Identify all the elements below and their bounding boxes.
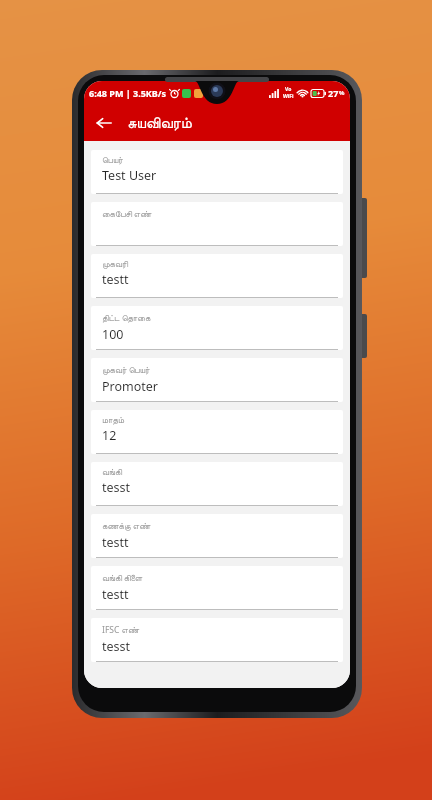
button[interactable]: கைபேசி எண் xyxy=(91,202,343,246)
staticText: % xyxy=(339,89,345,97)
staticText: முகவர் பெயர் xyxy=(102,364,150,376)
staticText: மாதம் xyxy=(102,416,125,425)
staticText: testt xyxy=(102,586,129,603)
button[interactable]: முகவரி xyxy=(91,254,343,298)
staticText: முகவரி xyxy=(102,260,128,269)
button[interactable]: மாதம் xyxy=(91,410,343,454)
button[interactable]: IFSC எண் xyxy=(91,618,343,662)
staticText: Vo xyxy=(285,86,292,93)
staticText: கணக்கு எண் xyxy=(102,520,151,532)
button[interactable]: வங்கி கிளை xyxy=(91,566,343,610)
staticText: திட்ட தொகை xyxy=(102,312,151,324)
button[interactable]: Back xyxy=(90,109,118,137)
staticText: கைபேசி எண் xyxy=(102,208,152,220)
staticText: IFSC எண் xyxy=(102,624,140,636)
staticText: testt xyxy=(102,534,129,551)
staticText: சுயவிவரம் xyxy=(127,116,192,131)
staticText: 100 xyxy=(102,326,124,343)
staticText: Promoter xyxy=(102,378,159,395)
staticText: WiFi xyxy=(283,93,294,100)
button[interactable]: வங்கி xyxy=(91,462,343,506)
button[interactable]: திட்ட தொகை xyxy=(91,306,343,350)
staticText: tesst xyxy=(102,638,131,655)
button[interactable]: பெயர் xyxy=(91,150,343,194)
staticText: testt xyxy=(102,271,129,288)
staticText: Test User xyxy=(102,167,157,184)
button[interactable]: முகவர் பெயர் xyxy=(91,358,343,402)
staticText: பெயர் xyxy=(102,156,123,165)
staticText: வங்கி கிளை xyxy=(102,572,143,584)
staticText: 27 xyxy=(328,87,339,99)
staticText: 6:48 PM | 3.5KB/s xyxy=(89,87,167,99)
button[interactable]: கணக்கு எண் xyxy=(91,514,343,558)
staticText: வங்கி xyxy=(102,468,122,477)
staticText: 12 xyxy=(102,427,117,444)
staticText: tesst xyxy=(102,479,131,496)
